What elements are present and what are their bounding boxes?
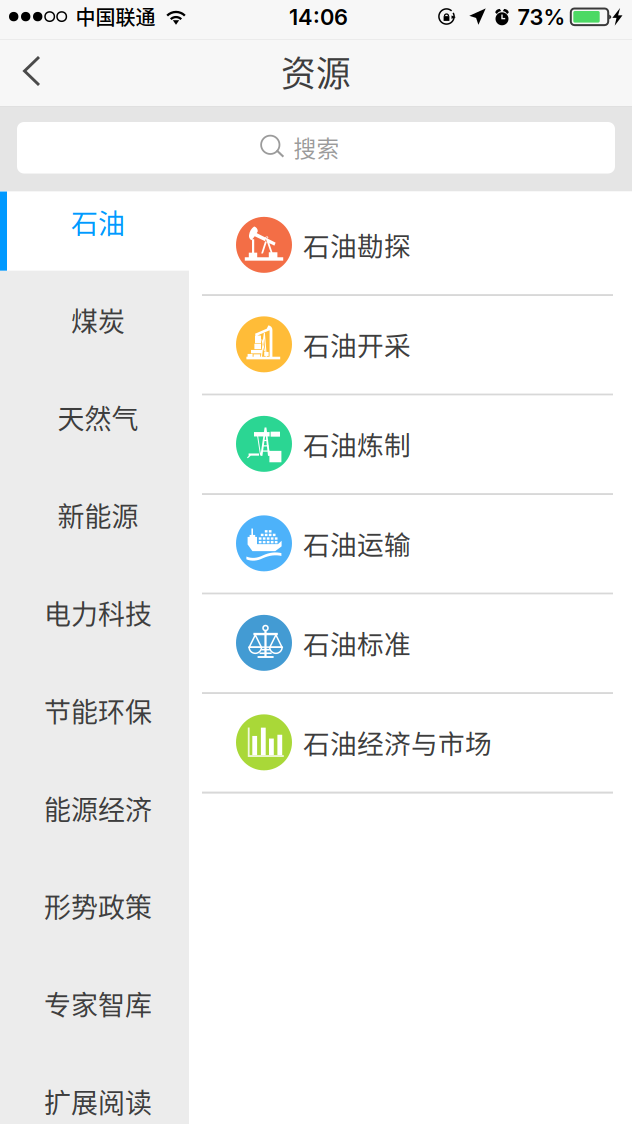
staticText: 石油勘探 [303, 225, 411, 264]
button[interactable]: 扩展阅读 [0, 1052, 189, 1124]
staticText: 石油 [71, 202, 125, 241]
button[interactable]: 新能源 [0, 466, 189, 564]
staticText: 能源经济 [44, 789, 152, 828]
button[interactable]: 石油运输 [189, 495, 632, 595]
staticText: 14:06 [289, 4, 348, 30]
staticText: 中国联通 [75, 2, 155, 31]
button[interactable]: 石油炼制 [189, 396, 632, 495]
staticText: 新能源 [57, 496, 138, 535]
staticText: 电力科技 [44, 593, 152, 632]
staticText: 煤炭 [71, 300, 125, 339]
button[interactable]: 天然气 [0, 368, 189, 466]
staticText: 扩展阅读 [44, 1082, 152, 1121]
staticText: 形势政策 [44, 886, 152, 925]
staticText: 石油炼制 [303, 424, 411, 463]
button[interactable]: Back [2, 43, 58, 99]
staticText: 73% [517, 4, 565, 30]
staticText: 石油标准 [303, 623, 411, 662]
staticText: 搜索 [293, 131, 339, 163]
staticText: 石油运输 [303, 524, 411, 562]
staticText: 节能环保 [44, 691, 152, 730]
button[interactable]: 煤炭 [0, 271, 189, 368]
button[interactable]: 石油经济与市场 [189, 694, 632, 794]
button[interactable]: 能源经济 [0, 759, 189, 857]
button[interactable]: 搜索 [17, 122, 615, 173]
button[interactable]: 石油勘探 [189, 197, 632, 296]
button[interactable]: 石油 [0, 173, 189, 271]
button[interactable]: 专家智库 [0, 955, 189, 1052]
staticText: 专家智库 [44, 984, 152, 1023]
button[interactable]: 石油标准 [189, 595, 632, 694]
button[interactable]: 节能环保 [0, 662, 189, 759]
staticText: 资源 [281, 46, 351, 96]
staticText: 石油开采 [303, 325, 411, 363]
staticText: 天然气 [57, 398, 138, 437]
button[interactable]: 形势政策 [0, 857, 189, 955]
staticText: 石油经济与市场 [303, 723, 492, 761]
button[interactable]: 石油开采 [189, 296, 632, 396]
button[interactable]: 电力科技 [0, 564, 189, 662]
